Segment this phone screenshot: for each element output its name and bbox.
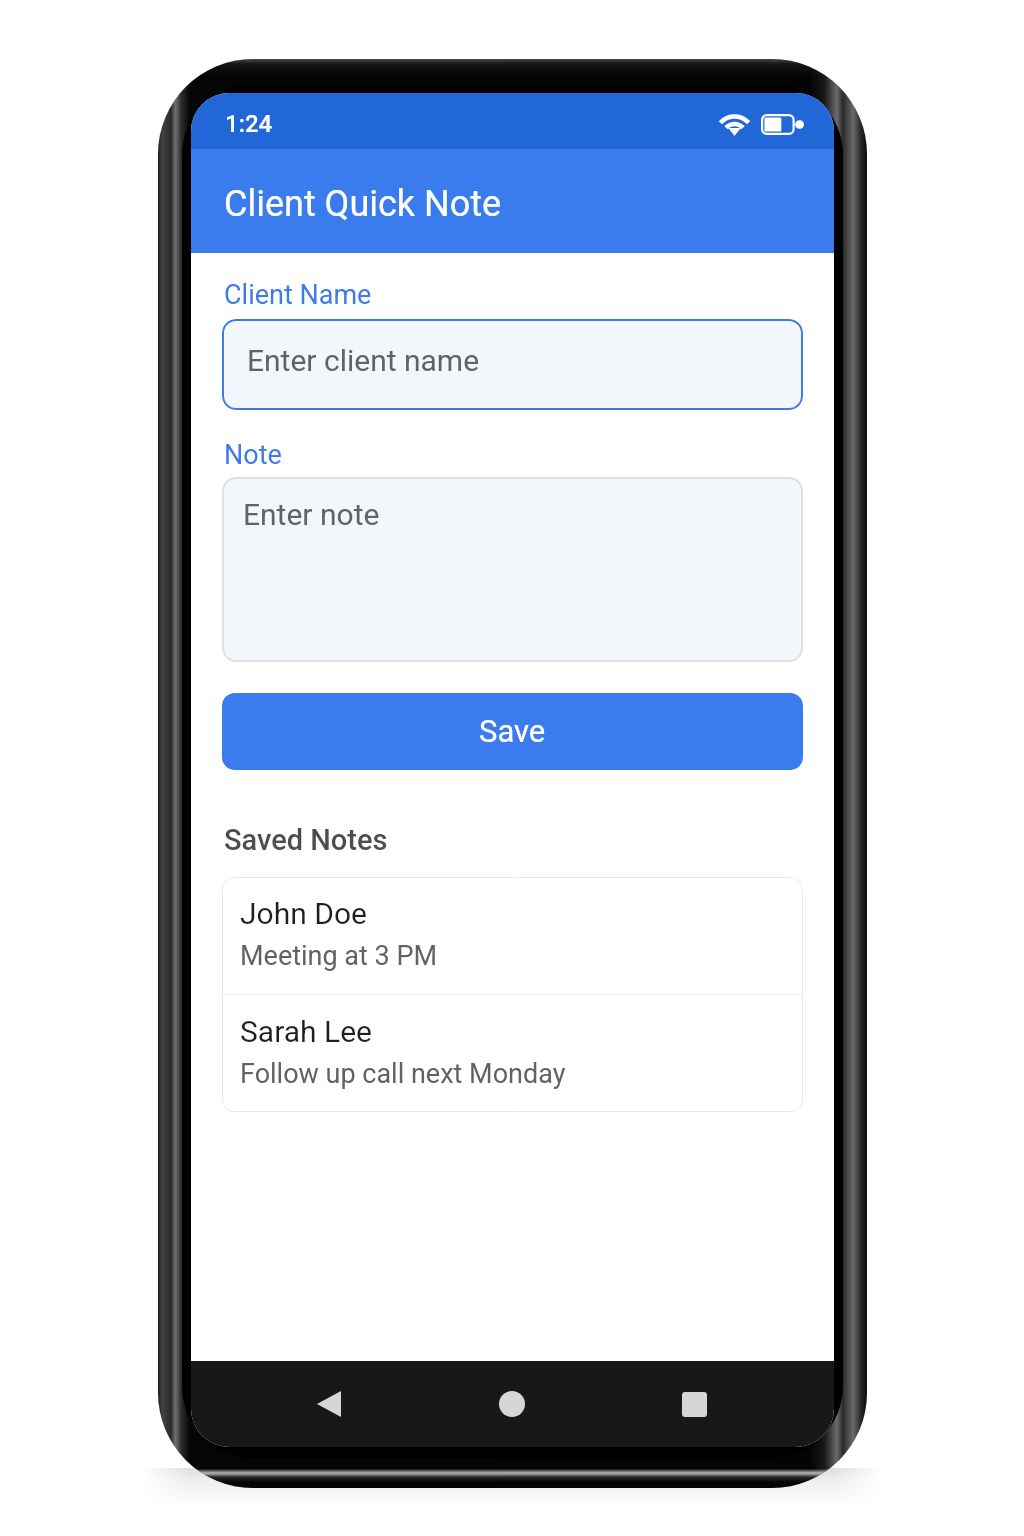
button[interactable]: Enter note	[222, 477, 803, 662]
button[interactable]: Enter client name	[222, 319, 803, 410]
button[interactable]: Home	[475, 1361, 549, 1447]
staticText: Follow up call next Monday	[240, 1058, 566, 1090]
staticText: Client Name	[224, 279, 372, 311]
staticText: John Doe	[240, 896, 367, 931]
button[interactable]: Sarah Lee	[222, 995, 803, 1112]
staticText: Enter note	[243, 497, 380, 532]
staticText: Save	[479, 713, 546, 749]
staticText: 1:24	[225, 110, 273, 138]
button[interactable]: Save	[222, 693, 803, 770]
staticText: Client Quick Note	[224, 183, 502, 225]
staticText: Enter client name	[247, 343, 480, 378]
other: Battery	[761, 114, 804, 135]
staticText: Meeting at 3 PM	[240, 940, 438, 972]
button[interactable]: John Doe	[222, 877, 803, 994]
staticText: Note	[224, 439, 282, 471]
staticText: Sarah Lee	[240, 1014, 372, 1049]
button[interactable]: Recent apps	[657, 1361, 731, 1447]
other: Wi-Fi	[719, 113, 750, 135]
staticText: Saved Notes	[224, 823, 388, 857]
button[interactable]: Back	[292, 1361, 366, 1447]
